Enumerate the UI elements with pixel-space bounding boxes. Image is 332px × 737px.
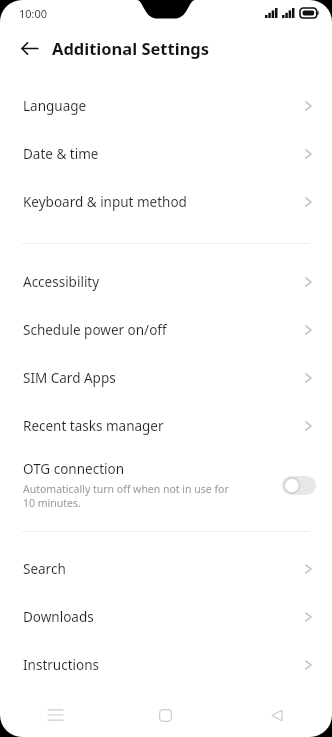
button[interactable]: Date & time	[0, 130, 332, 178]
staticText: Additional Settings	[52, 37, 210, 59]
button[interactable]: OTG connection	[0, 450, 332, 520]
staticText: Accessibility	[23, 273, 304, 291]
staticText: OTG connection	[23, 460, 125, 478]
staticText: Language	[23, 97, 304, 115]
button[interactable]: Accessibility	[0, 258, 332, 306]
staticText: Instructions	[23, 656, 304, 674]
button[interactable]: Back	[221, 693, 332, 737]
staticText: Search	[23, 560, 304, 578]
staticText: Keyboard & input method	[23, 193, 304, 211]
staticText: Schedule power on/off	[23, 321, 304, 339]
button[interactable]: SIM Card Apps	[0, 354, 332, 402]
button[interactable]: Home	[110, 693, 221, 737]
staticText: Automatically turn off when not in use f…	[23, 482, 230, 510]
staticText: Downloads	[23, 608, 304, 626]
button[interactable]: Back	[13, 32, 45, 64]
staticText: Date & time	[23, 145, 304, 163]
button[interactable]: Recent tasks manager	[0, 402, 332, 450]
staticText: 10:00	[19, 6, 48, 21]
button[interactable]: Recent apps	[0, 693, 110, 737]
button[interactable]: Keyboard & input method	[0, 178, 332, 226]
button[interactable]: Instructions	[0, 641, 332, 689]
button[interactable]: Language	[0, 82, 332, 130]
button[interactable]: Search	[0, 545, 332, 593]
button[interactable]: Schedule power on/off	[0, 306, 332, 354]
staticText: Recent tasks manager	[23, 417, 304, 435]
staticText: SIM Card Apps	[23, 369, 304, 387]
button[interactable]: OTG connection toggle	[282, 476, 316, 495]
button[interactable]: Downloads	[0, 593, 332, 641]
